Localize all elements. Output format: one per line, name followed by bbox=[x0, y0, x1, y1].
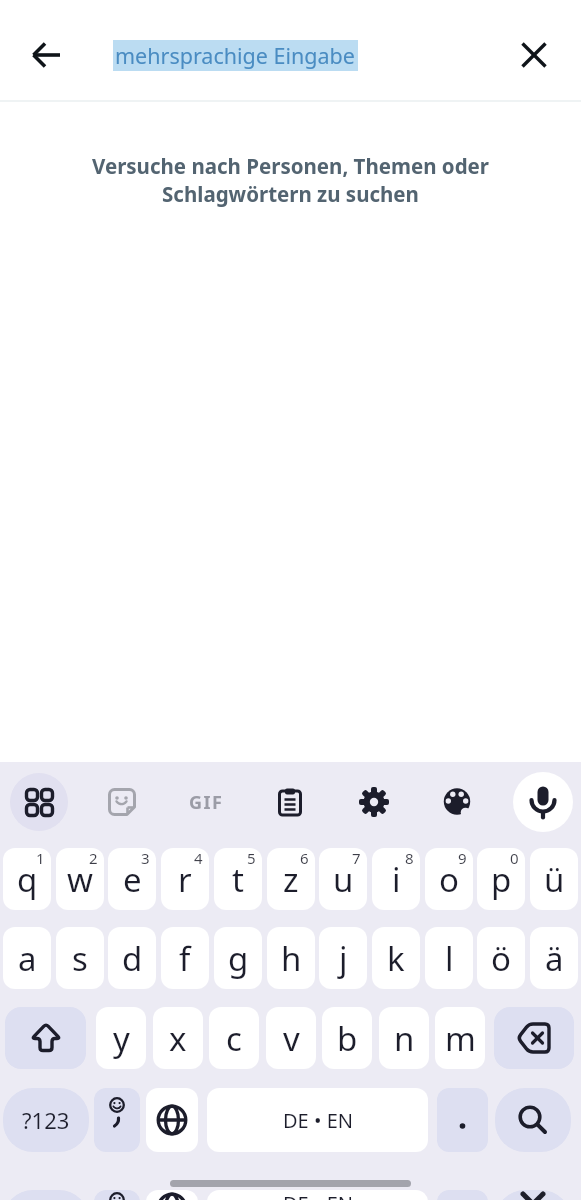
staticText: mehrsprachige Eingabe bbox=[115, 41, 355, 70]
button[interactable]: j bbox=[319, 927, 367, 989]
button[interactable]: DE • EN bbox=[207, 1088, 428, 1152]
button[interactable]: ä bbox=[530, 927, 578, 989]
staticText: ?123 bbox=[22, 1105, 70, 1135]
staticText: ä bbox=[545, 936, 564, 981]
staticText: x bbox=[169, 1016, 187, 1061]
staticText: m bbox=[445, 1016, 476, 1061]
staticText: 6 bbox=[300, 848, 309, 868]
staticText: o bbox=[439, 857, 459, 902]
button[interactable]: o bbox=[425, 848, 473, 910]
staticText: a bbox=[18, 936, 37, 981]
staticText: DE • EN bbox=[283, 1107, 353, 1134]
button[interactable]: p bbox=[477, 848, 525, 910]
staticText: s bbox=[72, 936, 88, 981]
staticText: v bbox=[283, 1016, 300, 1061]
staticText: 3 bbox=[141, 848, 150, 868]
staticText: r bbox=[178, 857, 192, 902]
staticText: u bbox=[333, 857, 354, 902]
button[interactable]: ?123 bbox=[3, 1088, 89, 1152]
button[interactable]: y bbox=[96, 1007, 146, 1069]
staticText: 4 bbox=[194, 848, 203, 868]
button[interactable]: z bbox=[267, 848, 315, 910]
staticText: d bbox=[122, 936, 143, 981]
button[interactable]: t bbox=[214, 848, 262, 910]
staticText: Versuche nach Personen, Themen oder Schl… bbox=[40, 152, 541, 208]
button[interactable]: k bbox=[372, 927, 420, 989]
button[interactable]: b bbox=[322, 1007, 372, 1069]
button[interactable]: h bbox=[267, 927, 315, 989]
button[interactable]: e bbox=[108, 848, 156, 910]
button[interactable] bbox=[146, 1190, 198, 1200]
staticText: ü bbox=[544, 857, 565, 902]
staticText: z bbox=[283, 857, 299, 902]
button[interactable]: a bbox=[3, 927, 51, 989]
staticText: l bbox=[445, 936, 454, 981]
button[interactable] bbox=[10, 773, 68, 831]
button[interactable]: d bbox=[108, 927, 156, 989]
button[interactable]: f bbox=[161, 927, 209, 989]
button[interactable] bbox=[268, 780, 312, 824]
button[interactable] bbox=[495, 1088, 571, 1152]
button[interactable]: u bbox=[319, 848, 367, 910]
button[interactable] bbox=[352, 780, 396, 824]
button[interactable]: m bbox=[435, 1007, 485, 1069]
staticText: DE • EN bbox=[283, 1190, 353, 1200]
button[interactable]: s bbox=[56, 927, 104, 989]
staticText: b bbox=[337, 1016, 358, 1061]
staticText: q bbox=[17, 857, 38, 902]
button[interactable] bbox=[437, 1190, 488, 1200]
button[interactable]: ?123 bbox=[3, 1190, 89, 1200]
button[interactable] bbox=[100, 780, 144, 824]
button[interactable] bbox=[435, 780, 479, 824]
staticText: GIF bbox=[189, 790, 224, 815]
button[interactable]: mehrsprachige Eingabe bbox=[113, 36, 413, 74]
staticText: i bbox=[392, 857, 401, 902]
staticText: 0 bbox=[510, 848, 519, 868]
staticText: y bbox=[113, 1016, 130, 1061]
button[interactable] bbox=[24, 32, 70, 78]
staticText: j bbox=[339, 936, 348, 981]
button[interactable] bbox=[494, 1007, 574, 1069]
button[interactable] bbox=[5, 1007, 86, 1069]
button[interactable]: c bbox=[209, 1007, 259, 1069]
button[interactable]: l bbox=[425, 927, 473, 989]
staticText: n bbox=[394, 1016, 415, 1061]
staticText: 1 bbox=[36, 848, 45, 868]
button[interactable] bbox=[513, 772, 573, 832]
button[interactable]: ö bbox=[477, 927, 525, 989]
button[interactable]: n bbox=[379, 1007, 429, 1069]
button[interactable] bbox=[437, 1088, 488, 1152]
button[interactable] bbox=[94, 1190, 140, 1200]
staticText: 7 bbox=[352, 848, 361, 868]
staticText: c bbox=[226, 1016, 242, 1061]
staticText: 9 bbox=[458, 848, 467, 868]
button[interactable]: i bbox=[372, 848, 420, 910]
staticText: 2 bbox=[89, 848, 98, 868]
button[interactable]: ü bbox=[530, 848, 578, 910]
button[interactable] bbox=[94, 1088, 140, 1152]
staticText: h bbox=[281, 936, 302, 981]
button[interactable]: x bbox=[153, 1007, 203, 1069]
staticText: f bbox=[179, 936, 191, 981]
button[interactable]: DE • EN bbox=[207, 1190, 428, 1200]
staticText: w bbox=[67, 857, 93, 902]
button[interactable] bbox=[146, 1088, 198, 1152]
staticText: 8 bbox=[405, 848, 414, 868]
button[interactable] bbox=[495, 1190, 571, 1200]
button[interactable]: g bbox=[214, 927, 262, 989]
staticText: g bbox=[228, 936, 249, 981]
staticText: k bbox=[387, 936, 405, 981]
button[interactable]: q bbox=[3, 848, 51, 910]
staticText: 5 bbox=[247, 848, 256, 868]
button[interactable] bbox=[515, 36, 553, 74]
button[interactable]: v bbox=[266, 1007, 316, 1069]
button[interactable]: GIF bbox=[184, 780, 228, 824]
button[interactable]: w bbox=[56, 848, 104, 910]
staticText: ö bbox=[491, 936, 511, 981]
staticText: p bbox=[491, 857, 512, 902]
staticText: e bbox=[123, 857, 142, 902]
button[interactable]: r bbox=[161, 848, 209, 910]
staticText: t bbox=[232, 857, 244, 902]
